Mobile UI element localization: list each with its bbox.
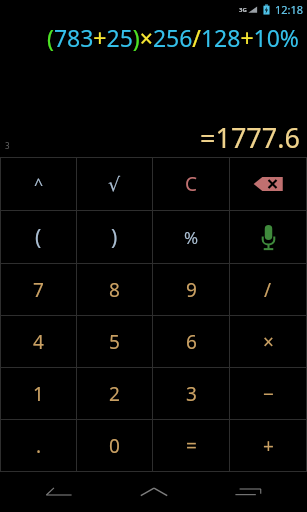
button[interactable]: 6	[153, 316, 229, 367]
staticText: 3G	[239, 6, 247, 14]
staticText: ^	[34, 173, 44, 195]
button[interactable]: (	[1, 211, 76, 263]
staticText: 3	[5, 140, 10, 151]
button[interactable]: Home	[119, 472, 189, 512]
button[interactable]: %	[153, 211, 229, 263]
button[interactable]: Backspace	[230, 158, 306, 210]
staticText: 1	[33, 381, 44, 407]
staticText: 8	[109, 277, 120, 303]
button[interactable]: 9	[153, 264, 229, 315]
staticText: +	[263, 433, 274, 459]
staticText: (	[35, 223, 42, 252]
staticText: 12:18	[275, 2, 304, 17]
staticText: =1777.6	[200, 119, 300, 156]
button[interactable]: 3	[153, 368, 229, 419]
staticText: 9	[186, 277, 197, 303]
button[interactable]: +	[230, 420, 306, 471]
staticText: 5	[109, 329, 120, 355]
button[interactable]: −	[230, 368, 306, 419]
button[interactable]: Recent apps	[213, 472, 283, 512]
staticText: =	[186, 433, 197, 459]
staticText: 4	[33, 329, 44, 355]
button[interactable]: C	[153, 158, 229, 210]
button[interactable]: 8	[77, 264, 152, 315]
button[interactable]: =	[153, 420, 229, 471]
button[interactable]: √	[77, 158, 152, 210]
button[interactable]: .	[1, 420, 76, 471]
staticText: 7	[33, 277, 44, 303]
button[interactable]: 2	[77, 368, 152, 419]
button[interactable]: )	[77, 211, 152, 263]
button[interactable]: 1	[1, 368, 76, 419]
staticText: 3	[186, 381, 197, 407]
staticText: −	[263, 381, 274, 407]
button[interactable]: 7	[1, 264, 76, 315]
button[interactable]: 4	[1, 316, 76, 367]
staticText: /	[264, 277, 272, 303]
staticText: C	[185, 171, 198, 197]
button[interactable]: /	[230, 264, 306, 315]
staticText: %	[184, 226, 199, 249]
staticText: 6	[186, 329, 197, 355]
staticText: ×	[263, 329, 274, 355]
staticText: √	[108, 173, 121, 195]
staticText: )	[111, 223, 118, 252]
button[interactable]: ^	[1, 158, 76, 210]
button[interactable]: Voice input	[230, 211, 306, 263]
staticText: (783+25)×256/128+10%	[47, 22, 299, 53]
button[interactable]: Back	[24, 472, 94, 512]
staticText: 2	[109, 381, 120, 407]
button[interactable]: ×	[230, 316, 306, 367]
button[interactable]: 5	[77, 316, 152, 367]
staticText: .	[36, 433, 42, 459]
staticText: 0	[109, 433, 120, 459]
button[interactable]: 0	[77, 420, 152, 471]
